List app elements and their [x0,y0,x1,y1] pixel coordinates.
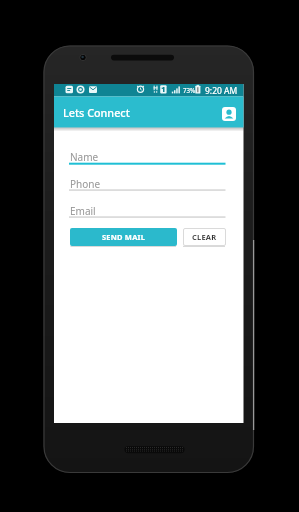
staticText: Email [70,204,96,218]
button[interactable]: CLEAR [183,228,226,246]
staticText: Name [70,150,99,164]
button[interactable]: SEND MAIL [70,228,177,246]
staticText: Lets Connect [63,105,130,120]
button[interactable]: Name [69,145,226,165]
staticText: 73% [183,86,196,94]
button[interactable] [222,107,236,121]
button[interactable]: Phone [69,172,226,191]
staticText: SEND MAIL [102,232,146,242]
staticText: CLEAR [192,232,217,242]
staticText: 9:20 AM [205,85,238,97]
staticText: Phone [70,177,101,191]
button[interactable]: Email [69,199,226,218]
